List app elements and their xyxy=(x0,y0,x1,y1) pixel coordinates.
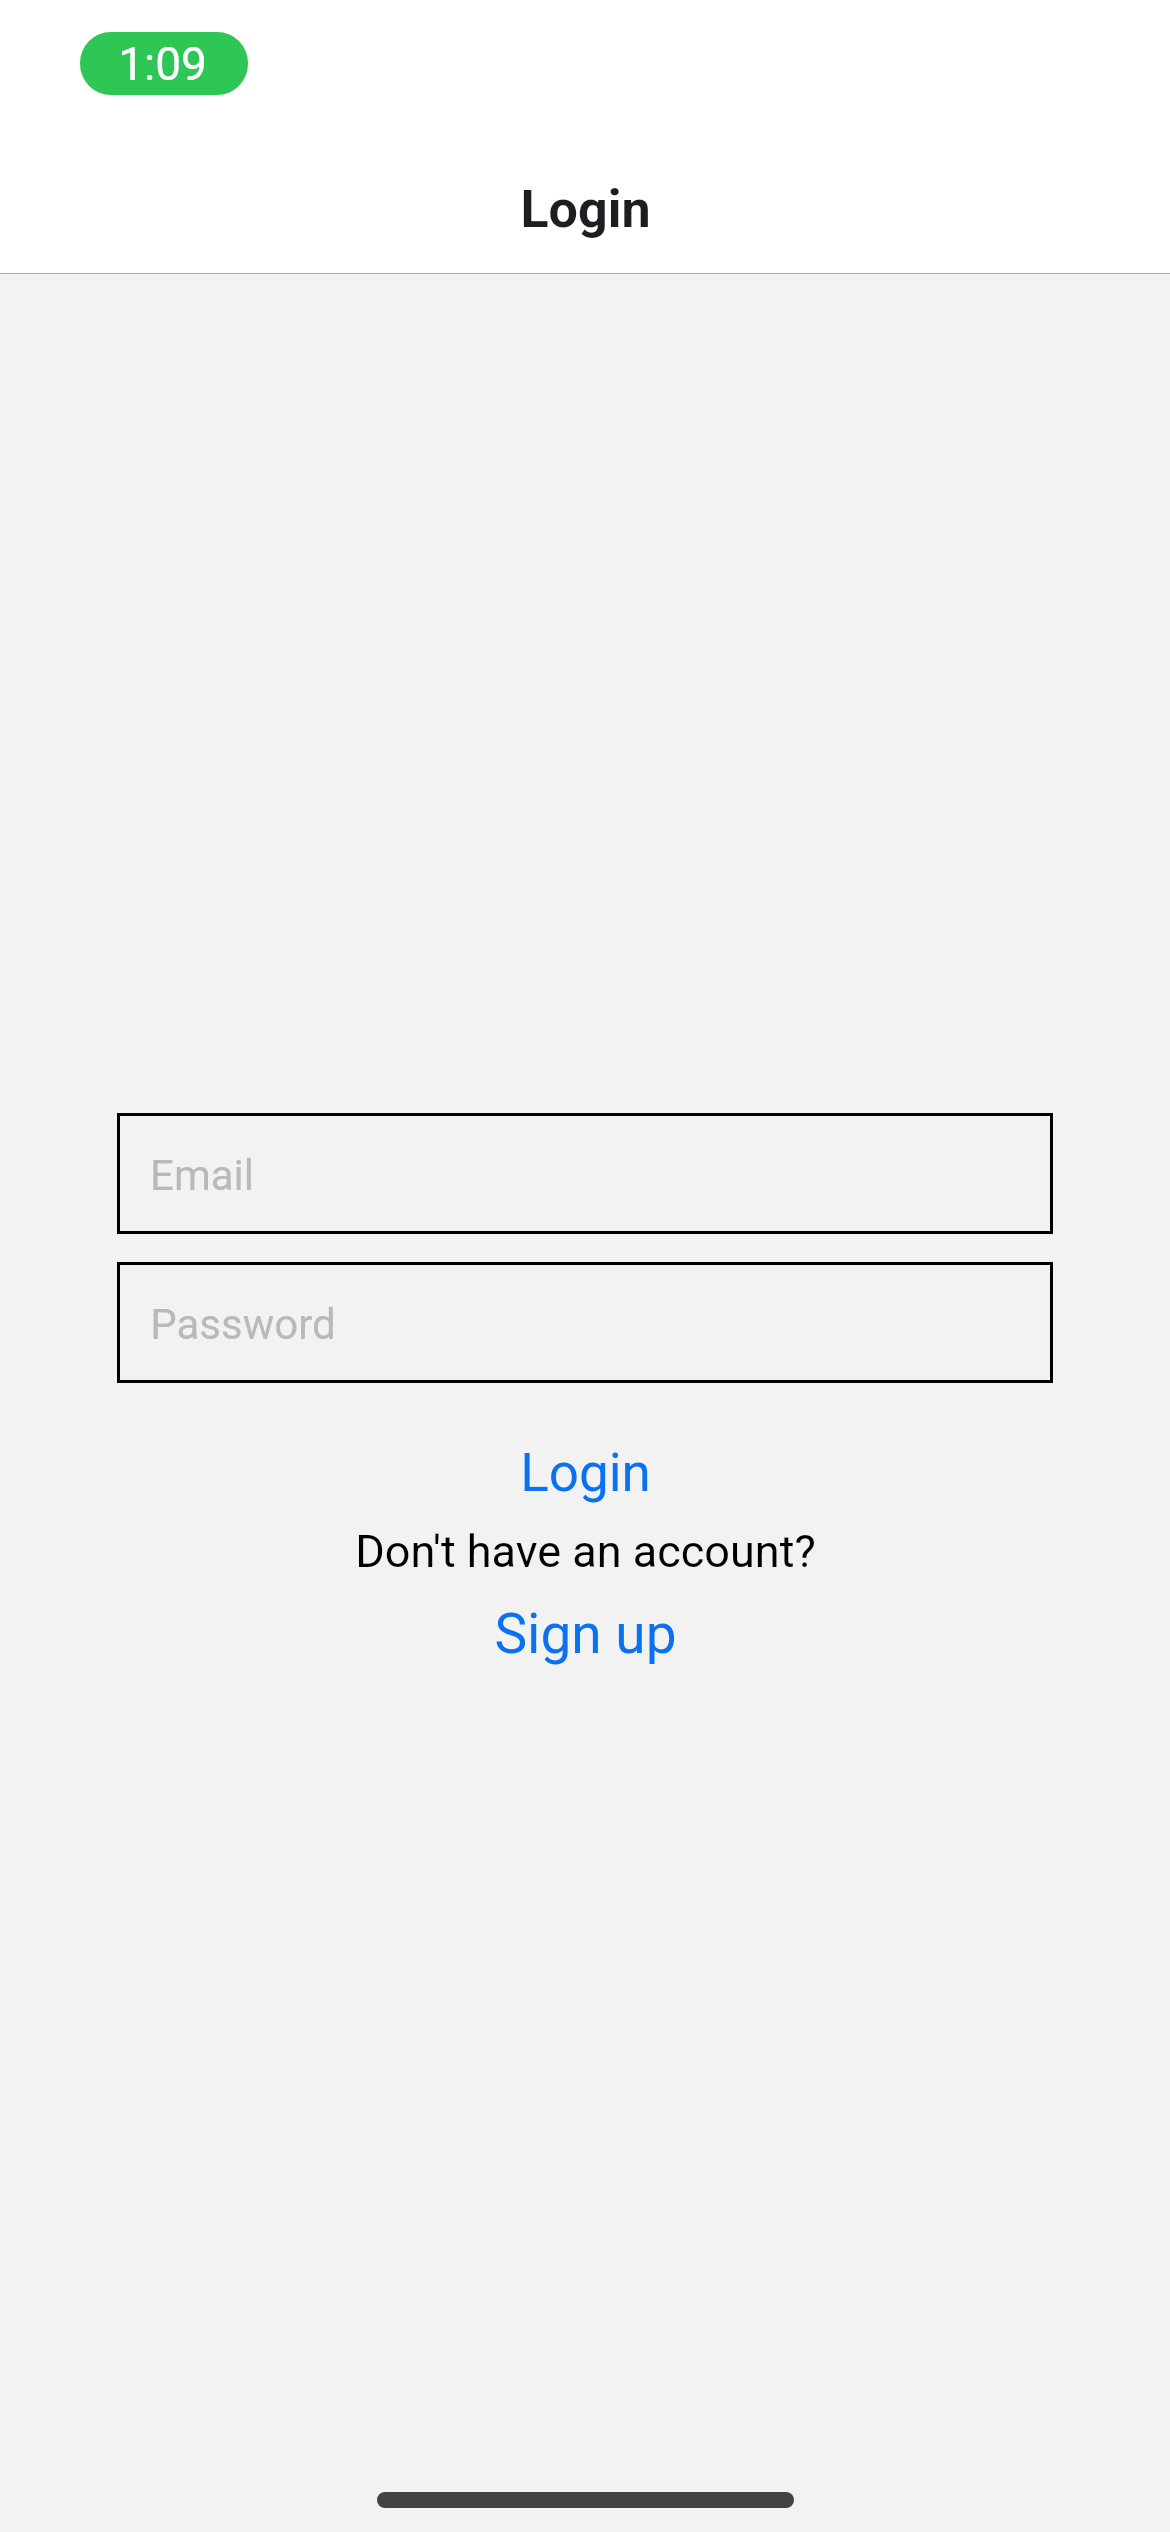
staticText: Login xyxy=(520,179,651,240)
button[interactable]: Sign up xyxy=(464,1598,707,1670)
button[interactable]: Screen recording, 1:09 xyxy=(80,32,248,95)
staticText: Sign up xyxy=(494,1602,677,1666)
button[interactable]: Password xyxy=(117,1262,1053,1383)
button[interactable]: Login xyxy=(490,1438,681,1508)
button[interactable]: Email xyxy=(117,1113,1053,1234)
staticText: Login xyxy=(520,1442,651,1504)
staticText: Don't have an account? xyxy=(355,1525,816,1578)
staticText: 1:09 xyxy=(118,37,207,91)
staticText: Password xyxy=(150,1300,336,1349)
staticText: Email xyxy=(150,1151,254,1200)
